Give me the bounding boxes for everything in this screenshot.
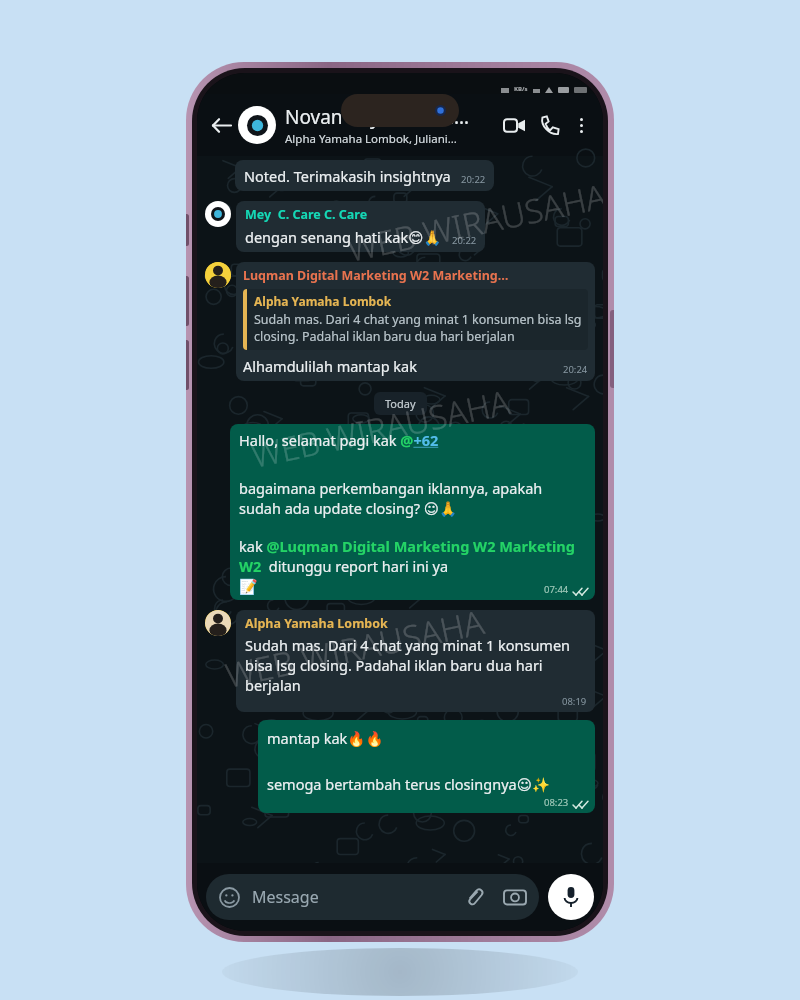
other: Emoji bbox=[219, 887, 240, 908]
staticText: Alpha Yamaha Lombok, Juliani… bbox=[285, 131, 457, 147]
staticText: Alpha Yamaha Lombok bbox=[245, 615, 388, 632]
staticText: 20:24 bbox=[563, 363, 588, 376]
button[interactable]: Voice message bbox=[548, 874, 594, 920]
staticText: WEB WIRAUSAHA bbox=[221, 599, 488, 698]
staticText: dengan senang hati kak😊🙏 bbox=[245, 227, 442, 247]
staticText: WEB WIRAUSAHA bbox=[343, 173, 603, 272]
staticText: 08:19 bbox=[562, 695, 587, 708]
staticText: Mey C. Care C. Care bbox=[245, 206, 368, 223]
other: Attach bbox=[464, 887, 484, 907]
button[interactable]: Alpha Yamaha Lombok bbox=[245, 615, 587, 708]
staticText: mantap kak🔥🔥 bbox=[267, 728, 384, 748]
staticText: 07:44 bbox=[544, 583, 569, 596]
staticText: semoga bertambah terus closingnya☺️✨ bbox=[267, 774, 550, 794]
button[interactable] bbox=[238, 106, 276, 144]
staticText: WEB WIRAUSAHA bbox=[247, 379, 514, 478]
button[interactable]: Back bbox=[204, 108, 238, 142]
staticText: 📝 bbox=[239, 578, 258, 596]
button[interactable]: More options bbox=[567, 111, 596, 140]
staticText: Sudah mas. Dari 4 chat yang minat 1 kons… bbox=[245, 635, 587, 695]
staticText: kak @Luqman Digital Marketing W2 Marketi… bbox=[239, 536, 587, 576]
button[interactable]: Emoji bbox=[219, 874, 526, 920]
staticText: Luqman Digital Marketing W2 Marketing… bbox=[243, 267, 509, 284]
staticText: bagaimana perkembangan iklannya, apakah … bbox=[239, 478, 587, 518]
staticText: Noted. Terimakasih insightnya bbox=[244, 166, 451, 186]
staticText: Sudah mas. Dari 4 chat yang minat 1 kons… bbox=[254, 311, 582, 345]
button[interactable]: Video call bbox=[497, 108, 532, 143]
button[interactable]: mantap kak🔥🔥 bbox=[267, 728, 587, 809]
button[interactable]: Noted. Terimakasih insightnya bbox=[244, 166, 486, 186]
staticText: Message bbox=[252, 886, 319, 908]
staticText: Today bbox=[385, 396, 416, 411]
other: Camera bbox=[504, 886, 526, 908]
staticText: 20:22 bbox=[452, 234, 477, 247]
staticText: 20:22 bbox=[461, 173, 486, 186]
staticText: Alhamdulilah mantap kak bbox=[243, 356, 417, 376]
button[interactable]: Luqman Digital Marketing W2 Marketing… bbox=[243, 267, 588, 376]
staticText: KB/s bbox=[514, 85, 528, 93]
button[interactable]: Mey C. Care C. Care bbox=[245, 206, 477, 247]
staticText: Hallo, selamat pagi kak @+62 bbox=[239, 430, 439, 450]
staticText: 08:23 bbox=[544, 796, 569, 809]
button[interactable]: Hallo, selamat pagi kak @+62 bbox=[239, 430, 587, 596]
button[interactable]: Novan bay……………… bbox=[285, 104, 497, 147]
button[interactable]: Voice call bbox=[532, 108, 567, 143]
staticText: Novan bay……………… bbox=[285, 104, 469, 130]
staticText: Alpha Yamaha Lombok bbox=[254, 293, 392, 309]
